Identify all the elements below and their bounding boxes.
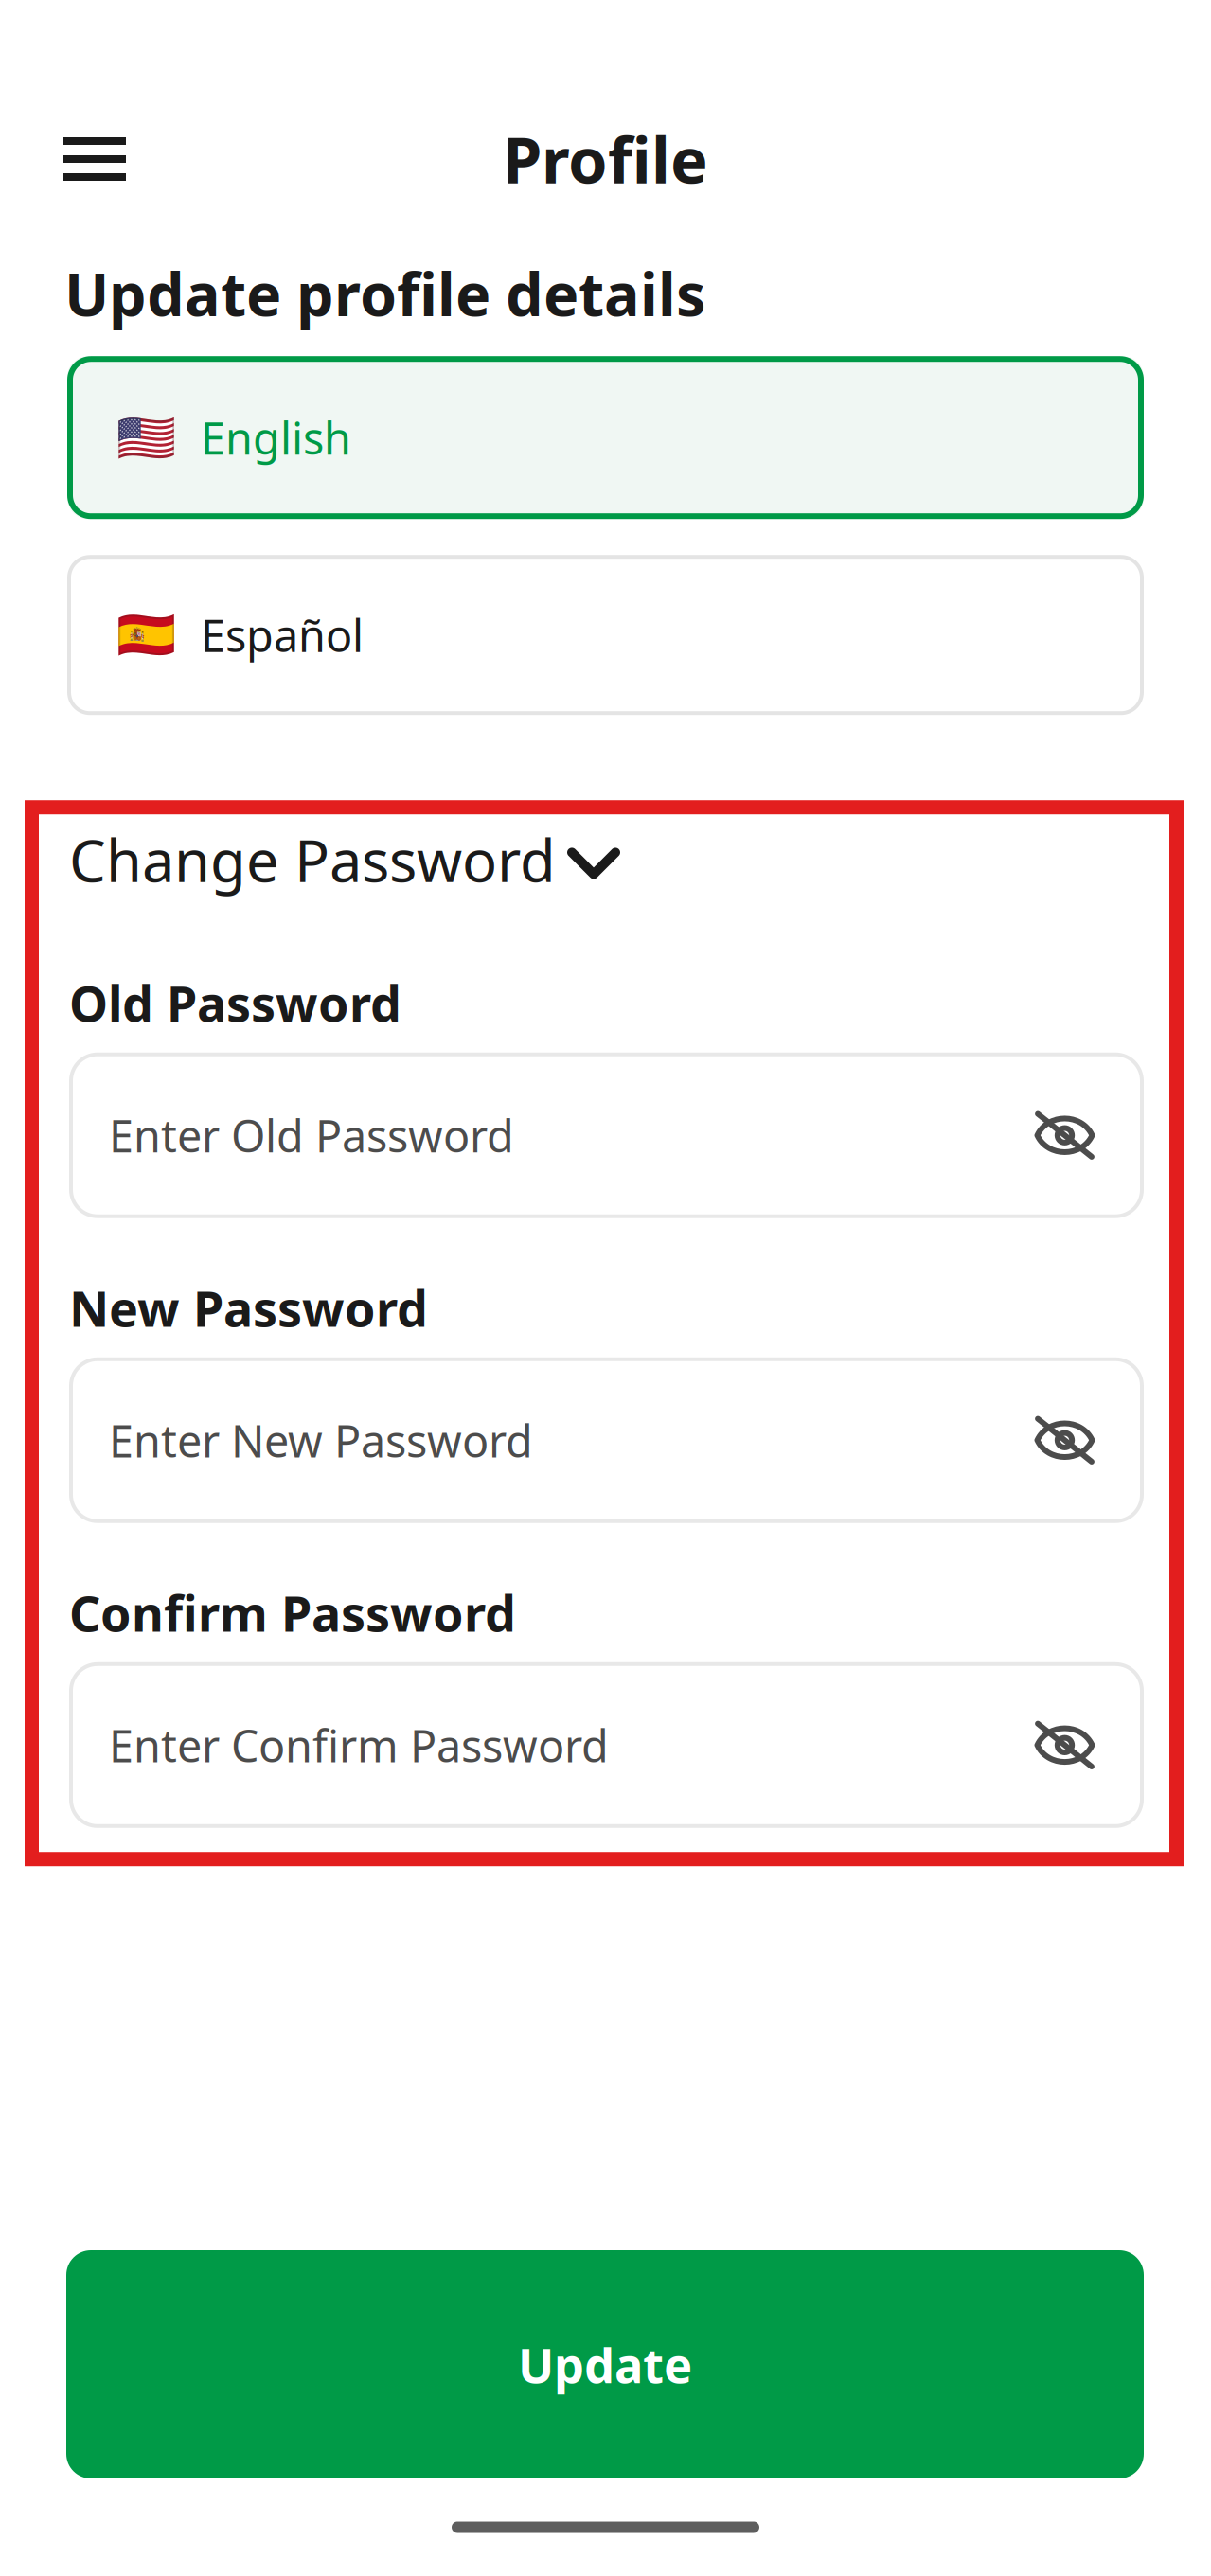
staticText: Update profile details xyxy=(64,254,705,332)
button[interactable]: Español xyxy=(67,555,1144,715)
staticText: Update xyxy=(518,2333,692,2396)
button[interactable]: Change Password xyxy=(69,821,1144,898)
button[interactable]: Update xyxy=(66,2250,1144,2478)
button[interactable]: Enter Old Password xyxy=(69,1052,1144,1218)
button[interactable]: Show Old Password xyxy=(986,1052,1144,1218)
staticText: Profile xyxy=(503,117,708,201)
button[interactable]: Enter New Password xyxy=(69,1357,1144,1523)
button[interactable]: Show Confirm Password xyxy=(986,1662,1144,1828)
button[interactable]: English xyxy=(67,356,1144,519)
button[interactable]: Menu xyxy=(63,138,126,180)
staticText: Change Password xyxy=(69,821,556,898)
staticText: Old Password xyxy=(69,970,401,1036)
staticText: 🇪🇸 xyxy=(116,608,176,662)
button[interactable]: Show New Password xyxy=(986,1357,1144,1523)
staticText: Enter New Password xyxy=(109,1411,533,1470)
staticText: Español xyxy=(201,606,364,664)
button[interactable]: Enter Confirm Password xyxy=(69,1662,1144,1828)
staticText: Enter Old Password xyxy=(109,1106,514,1165)
staticText: Enter Confirm Password xyxy=(109,1716,609,1774)
staticText: Confirm Password xyxy=(69,1580,516,1645)
staticText: New Password xyxy=(69,1275,428,1340)
staticText: 🇺🇸 xyxy=(116,410,176,465)
staticText: English xyxy=(201,408,351,467)
